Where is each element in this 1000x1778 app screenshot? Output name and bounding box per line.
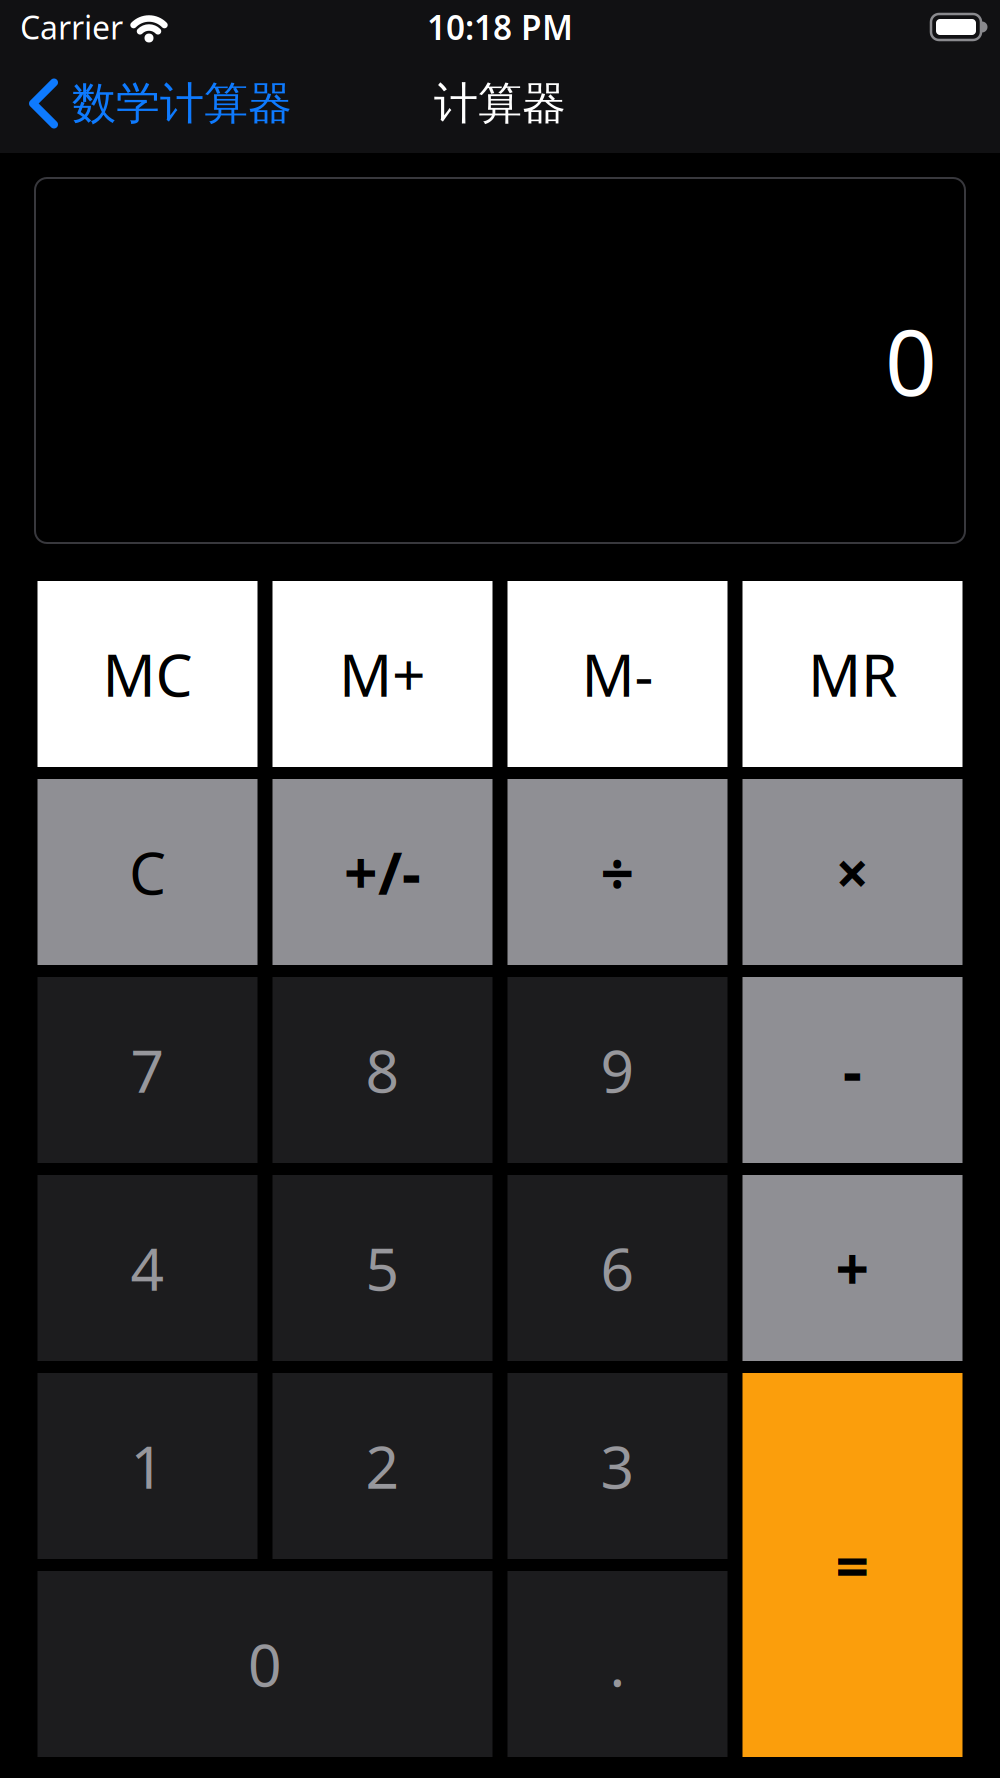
staticText: 3 [600,1427,634,1505]
staticText: M- [581,635,653,713]
staticText: 2 [365,1427,399,1505]
staticText: 4 [130,1229,164,1307]
staticText: × [835,833,869,911]
staticText: 1 [130,1427,164,1505]
staticText: 数学计算器 [72,76,292,130]
button[interactable]: 0 [37,1571,492,1757]
staticText: MC [102,635,192,713]
staticText: 0 [248,1625,282,1703]
button[interactable]: 7 [37,977,257,1163]
button[interactable]: × [742,779,962,965]
button[interactable]: +/- [272,779,492,965]
button[interactable]: M+ [272,581,492,767]
button[interactable]: C [37,779,257,965]
button[interactable]: 8 [272,977,492,1163]
staticText: Carrier [20,6,123,48]
staticText: 9 [600,1031,634,1109]
staticText: 计算器 [434,76,566,130]
staticText: 7 [130,1031,164,1109]
button[interactable]: ÷ [507,779,727,965]
button[interactable]: 9 [507,977,727,1163]
button[interactable]: MC [37,581,257,767]
button[interactable]: 返回 数学计算器 [0,76,292,130]
button[interactable]: 4 [37,1175,257,1361]
staticText: M+ [339,635,426,713]
button[interactable]: M- [507,581,727,767]
button[interactable]: + [742,1175,962,1361]
button[interactable]: = [742,1373,962,1757]
button[interactable]: MR [742,581,962,767]
staticText: 5 [365,1229,399,1307]
staticText: +/- [344,833,421,911]
button[interactable]: - [742,977,962,1163]
staticText: . [609,1625,625,1703]
staticText: - [843,1031,862,1109]
button[interactable]: 3 [507,1373,727,1559]
staticText: 6 [600,1229,634,1307]
staticText: C [129,833,166,911]
staticText: 8 [365,1031,399,1109]
button[interactable]: 5 [272,1175,492,1361]
button[interactable]: . [507,1571,727,1757]
staticText: 10:18 PM [427,5,573,49]
staticText: 0 [885,300,937,421]
staticText: MR [808,635,897,713]
button[interactable]: 6 [507,1175,727,1361]
staticText: + [835,1229,869,1307]
button[interactable]: 2 [272,1373,492,1559]
staticText: = [835,1526,869,1604]
staticText: ÷ [600,833,634,911]
button[interactable]: 1 [37,1373,257,1559]
